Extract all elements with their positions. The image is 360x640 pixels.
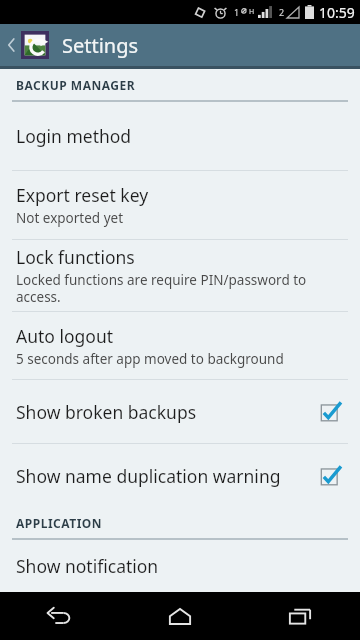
staticText: Auto logout	[16, 324, 114, 348]
button[interactable]: Show broken backups	[0, 380, 360, 443]
button[interactable]: Export reset key	[0, 171, 360, 239]
staticText: 2	[279, 6, 285, 18]
button[interactable]: Login method	[0, 102, 360, 170]
staticText: 5 seconds after app moved to background	[16, 350, 284, 368]
staticText: 10:59	[319, 3, 355, 22]
staticText: Export reset key	[16, 183, 149, 207]
staticText: Lock functions	[16, 245, 135, 269]
staticText: BACKUP MANAGER	[16, 77, 136, 93]
staticText: Show broken backups	[16, 400, 320, 424]
staticText: APPLICATION	[16, 515, 103, 531]
button[interactable]: Show name duplication warning	[0, 444, 360, 507]
button[interactable]: Lock functions	[0, 240, 360, 311]
staticText: Show name duplication warning	[16, 464, 320, 488]
staticText: Locked functions are require PIN/passwor…	[16, 271, 344, 306]
staticText: Login method	[16, 124, 132, 148]
staticText: 1	[234, 6, 240, 18]
staticText: Settings	[62, 32, 139, 59]
button[interactable]: Navigate up	[0, 24, 53, 66]
button[interactable]: Show notification	[0, 540, 360, 592]
staticText: Not exported yet	[16, 209, 124, 227]
button[interactable]: Back	[0, 592, 120, 640]
staticText: H	[249, 7, 255, 17]
button[interactable]: Recent apps	[240, 592, 360, 640]
button[interactable]: Auto logout	[0, 312, 360, 379]
button[interactable]: Home	[120, 592, 240, 640]
staticText: Show notification	[16, 554, 159, 578]
